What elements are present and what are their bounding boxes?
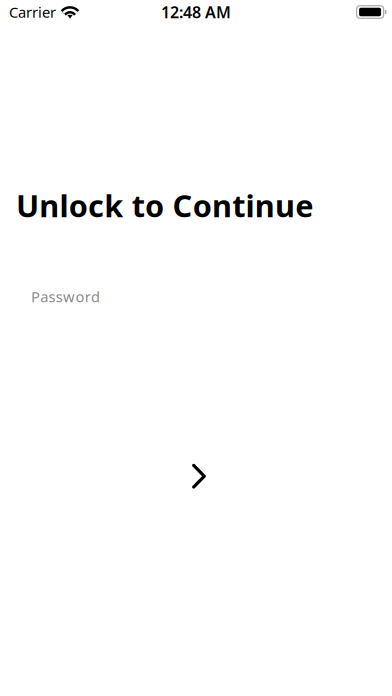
secureTextField[interactable]: Password xyxy=(0,279,392,314)
staticText: Unlock to Continue xyxy=(16,185,313,226)
button[interactable]: Continue xyxy=(174,453,218,497)
staticText: 12:48 AM xyxy=(161,1,231,23)
staticText: Password xyxy=(31,287,100,306)
button[interactable]: Password xyxy=(0,279,392,314)
staticText: Carrier xyxy=(9,2,56,22)
